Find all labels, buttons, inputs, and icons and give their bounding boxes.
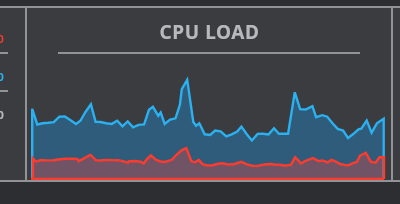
staticText: CPU LOAD <box>159 19 260 45</box>
button[interactable]: CPU user <box>0 52 25 90</box>
button[interactable]: CPU LOAD <box>27 18 391 46</box>
button[interactable]: CPU system <box>0 90 25 128</box>
staticText: 100 <box>0 31 4 46</box>
staticText: 100 <box>0 107 4 122</box>
button[interactable]: CPU total <box>0 14 25 52</box>
staticText: 100 <box>0 69 4 84</box>
